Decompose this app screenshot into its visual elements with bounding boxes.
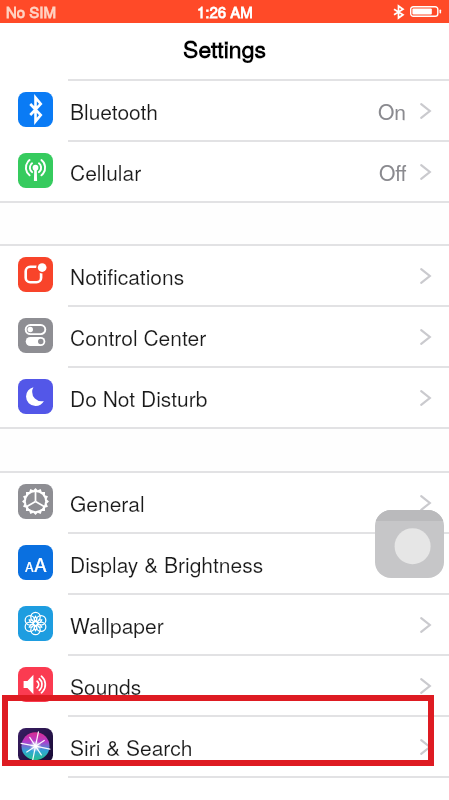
- button[interactable]: Sounds: [0, 656, 449, 717]
- staticText: Wallpaper: [70, 610, 164, 640]
- button[interactable]: Control Center: [0, 307, 449, 368]
- staticText: Sounds: [70, 671, 142, 701]
- button[interactable]: Wi-Fi: [0, 20, 449, 81]
- button[interactable]: Cellular: [0, 142, 449, 203]
- staticText: A: [25, 557, 34, 576]
- staticText: Settings: [183, 32, 266, 65]
- staticText: On: [378, 96, 407, 126]
- staticText: Do Not Disturb: [70, 383, 208, 413]
- button[interactable]: General: [0, 473, 449, 534]
- staticText: No SIM: [6, 1, 57, 22]
- staticText: Bluetooth: [70, 96, 158, 126]
- staticText: Display & Brightness: [70, 549, 264, 579]
- button[interactable]: Notifications: [0, 246, 449, 307]
- staticText: Notifications: [70, 261, 185, 291]
- staticText: Cellular: [70, 157, 142, 187]
- button[interactable]: Bluetooth: [0, 81, 449, 142]
- button[interactable]: A: [0, 534, 449, 595]
- button[interactable]: Siri & Search: [0, 717, 449, 778]
- staticText: Off: [379, 157, 407, 187]
- staticText: General: [70, 488, 145, 518]
- staticText: A: [34, 550, 47, 577]
- staticText: 1:26 AM: [197, 1, 253, 22]
- staticText: Control Center: [70, 322, 207, 352]
- staticText: Siri & Search: [70, 732, 193, 762]
- button[interactable]: AssistiveTouch: [375, 510, 444, 578]
- button[interactable]: Wallpaper: [0, 595, 449, 656]
- button[interactable]: Do Not Disturb: [0, 368, 449, 429]
- other: Bluetooth: [394, 6, 403, 18]
